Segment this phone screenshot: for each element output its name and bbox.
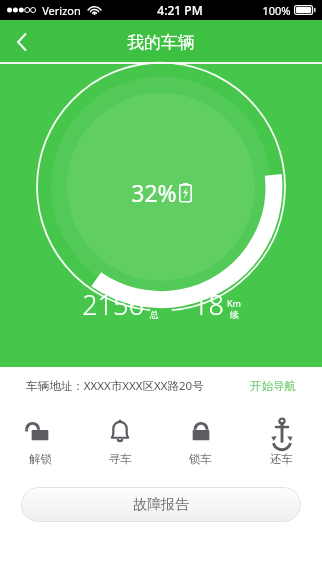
button[interactable]: 故障报告 — [21, 487, 301, 522]
staticText: 2156 — [82, 286, 144, 323]
staticText: 开始导航 — [250, 379, 296, 393]
staticText: 锁车 — [189, 452, 212, 466]
staticText: 寻车 — [109, 452, 132, 466]
staticText: 还车 — [270, 452, 293, 466]
staticText: Km — [227, 297, 241, 309]
staticText: 故障报告 — [133, 496, 189, 514]
staticText: Km — [147, 297, 161, 309]
staticText: 我的车辆 — [127, 32, 195, 53]
staticText: 解锁 — [29, 452, 52, 466]
button[interactable]: Return car — [241, 405, 322, 479]
staticText: 车辆地址：XXXX市XXX区XX路20号 — [26, 378, 204, 394]
staticText: 4:21 PM — [157, 2, 203, 18]
button[interactable]: 开始导航 — [248, 374, 298, 398]
button[interactable]: Unlock — [0, 405, 80, 479]
button[interactable]: Back — [0, 20, 44, 64]
staticText: 18 — [193, 286, 224, 323]
staticText: 32% — [131, 177, 177, 208]
button[interactable]: Find car — [80, 405, 160, 479]
staticText: 总 — [150, 309, 159, 320]
button[interactable]: Lock — [160, 405, 241, 479]
staticText: 100% — [262, 3, 291, 18]
staticText: Verizon — [42, 3, 81, 18]
staticText: 续 — [230, 309, 239, 320]
